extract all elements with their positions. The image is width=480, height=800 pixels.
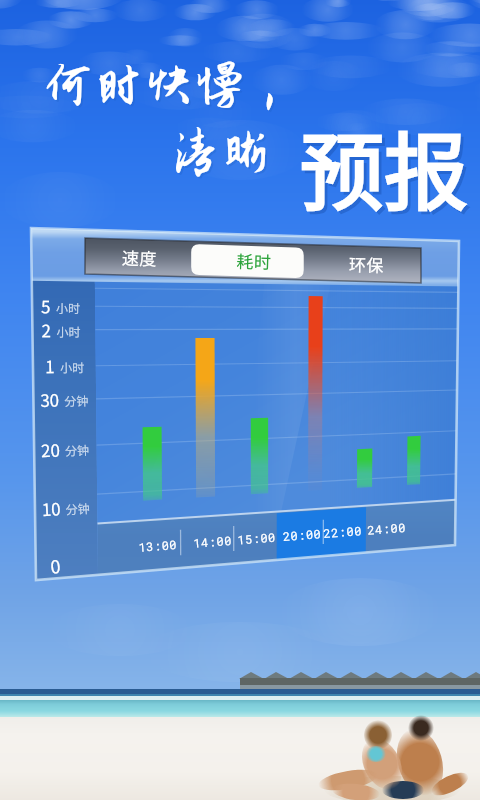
button[interactable] <box>0 0 480 800</box>
